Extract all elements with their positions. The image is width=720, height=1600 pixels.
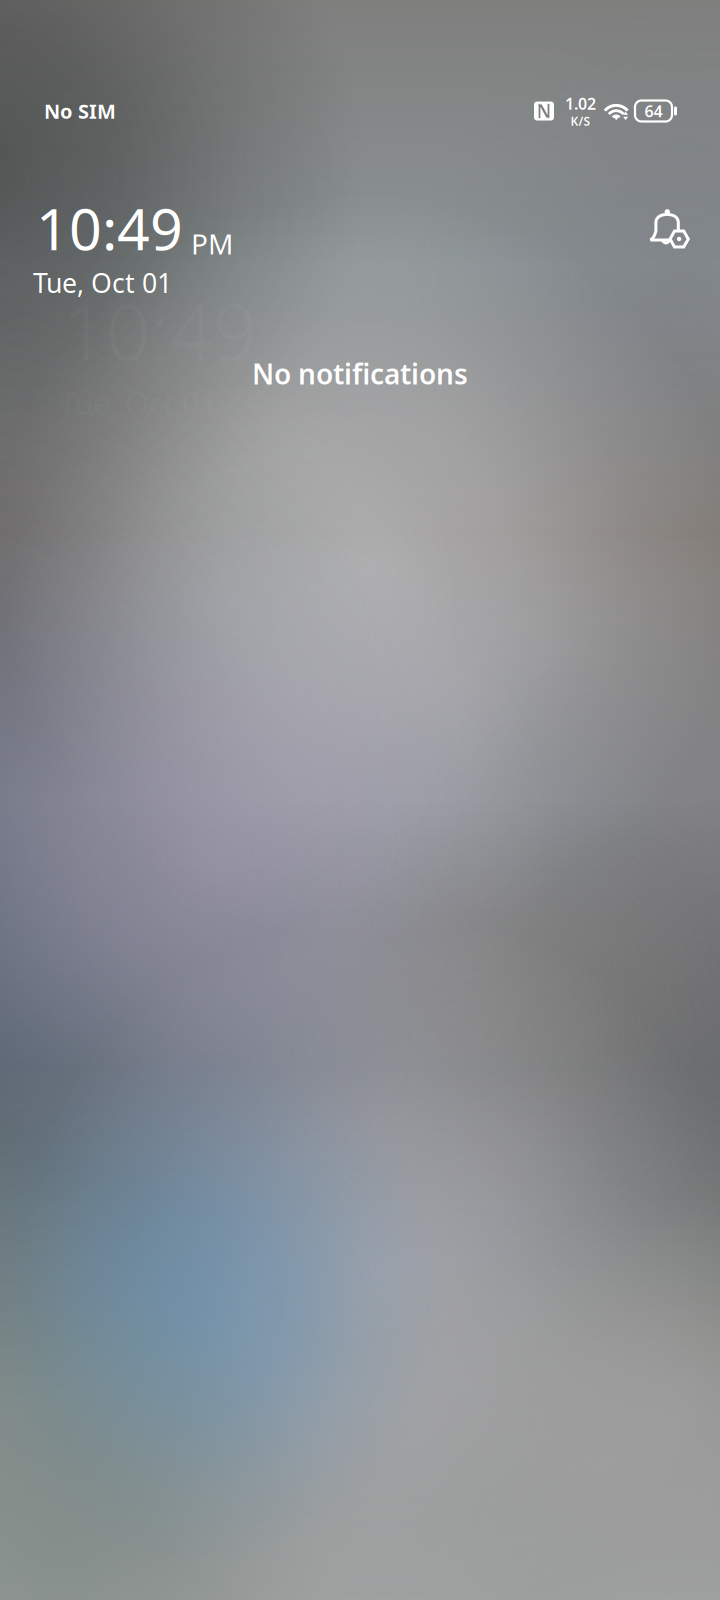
staticText: Tue, Oct 01: [60, 382, 218, 423]
button[interactable]: Notification settings: [641, 202, 697, 258]
staticText: No notifications: [252, 355, 468, 392]
staticText: PM: [191, 225, 233, 262]
button[interactable]: Tue, Oct 01: [33, 265, 172, 300]
staticText: K/S: [570, 113, 590, 129]
staticText: No SIM: [44, 98, 116, 124]
staticText: 10:49: [36, 190, 183, 266]
button[interactable]: 10:49: [36, 190, 233, 266]
staticText: 64: [644, 100, 662, 122]
staticText: Tue, Oct 01: [33, 265, 172, 300]
staticText: 10:49: [62, 279, 257, 382]
staticText: 1.02: [565, 93, 596, 114]
